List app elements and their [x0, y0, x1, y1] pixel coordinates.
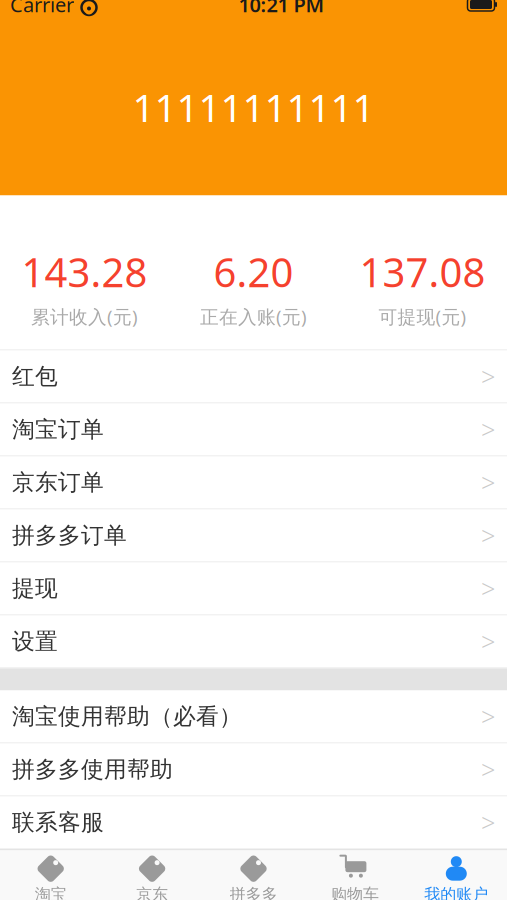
button[interactable]: 拼多多订单 — [0, 509, 507, 562]
button[interactable]: 淘宝订单 — [0, 403, 507, 456]
button[interactable]: 设置 — [0, 615, 507, 668]
staticText: 拼多多使用帮助 — [12, 756, 173, 783]
staticText: > — [481, 519, 495, 552]
button[interactable]: 红包 — [0, 350, 507, 403]
staticText: 淘宝订单 — [12, 416, 104, 443]
staticText: 红包 — [12, 363, 58, 390]
staticText: 137.08 — [359, 245, 485, 298]
staticText: 提现 — [12, 575, 58, 602]
button[interactable]: 联系客服 — [0, 796, 507, 849]
staticText: 购物车 — [331, 885, 379, 900]
staticText: > — [481, 625, 495, 658]
staticText: > — [481, 806, 495, 839]
staticText: 正在入账(元) — [200, 304, 307, 329]
staticText: 联系客服 — [12, 809, 104, 836]
staticText: > — [481, 572, 495, 605]
button[interactable]: 淘宝 — [0, 850, 101, 900]
button[interactable]: 提现 — [0, 562, 507, 615]
button[interactable]: 拼多多 — [203, 850, 304, 900]
staticText: > — [481, 753, 495, 786]
staticText: > — [481, 700, 495, 733]
staticText: Carrier — [10, 0, 74, 18]
staticText: 10:21 PM — [238, 0, 324, 18]
staticText: 6.20 — [213, 245, 293, 298]
button[interactable]: 京东 — [101, 850, 203, 900]
staticText: 143.28 — [21, 245, 147, 298]
staticText: 设置 — [12, 628, 58, 655]
button[interactable]: 京东订单 — [0, 456, 507, 509]
button[interactable]: 我的账户 — [406, 850, 507, 900]
staticText: 11111111111 — [132, 81, 374, 133]
staticText: 京东 — [136, 885, 168, 900]
staticText: > — [481, 466, 495, 499]
staticText: 淘宝 — [35, 885, 67, 900]
staticText: 我的账户 — [424, 885, 488, 900]
staticText: 可提现(元) — [378, 304, 466, 329]
staticText: 拼多多 — [229, 885, 277, 900]
staticText: > — [481, 413, 495, 446]
staticText: > — [481, 360, 495, 393]
button[interactable]: 购物车 — [304, 850, 406, 900]
button[interactable]: 拼多多使用帮助 — [0, 743, 507, 796]
staticText: 京东订单 — [12, 469, 104, 496]
button[interactable]: 淘宝使用帮助（必看） — [0, 690, 507, 743]
staticText: 拼多多订单 — [12, 522, 127, 549]
staticText: 淘宝使用帮助（必看） — [12, 703, 242, 730]
staticText: 累计收入(元) — [31, 304, 138, 329]
